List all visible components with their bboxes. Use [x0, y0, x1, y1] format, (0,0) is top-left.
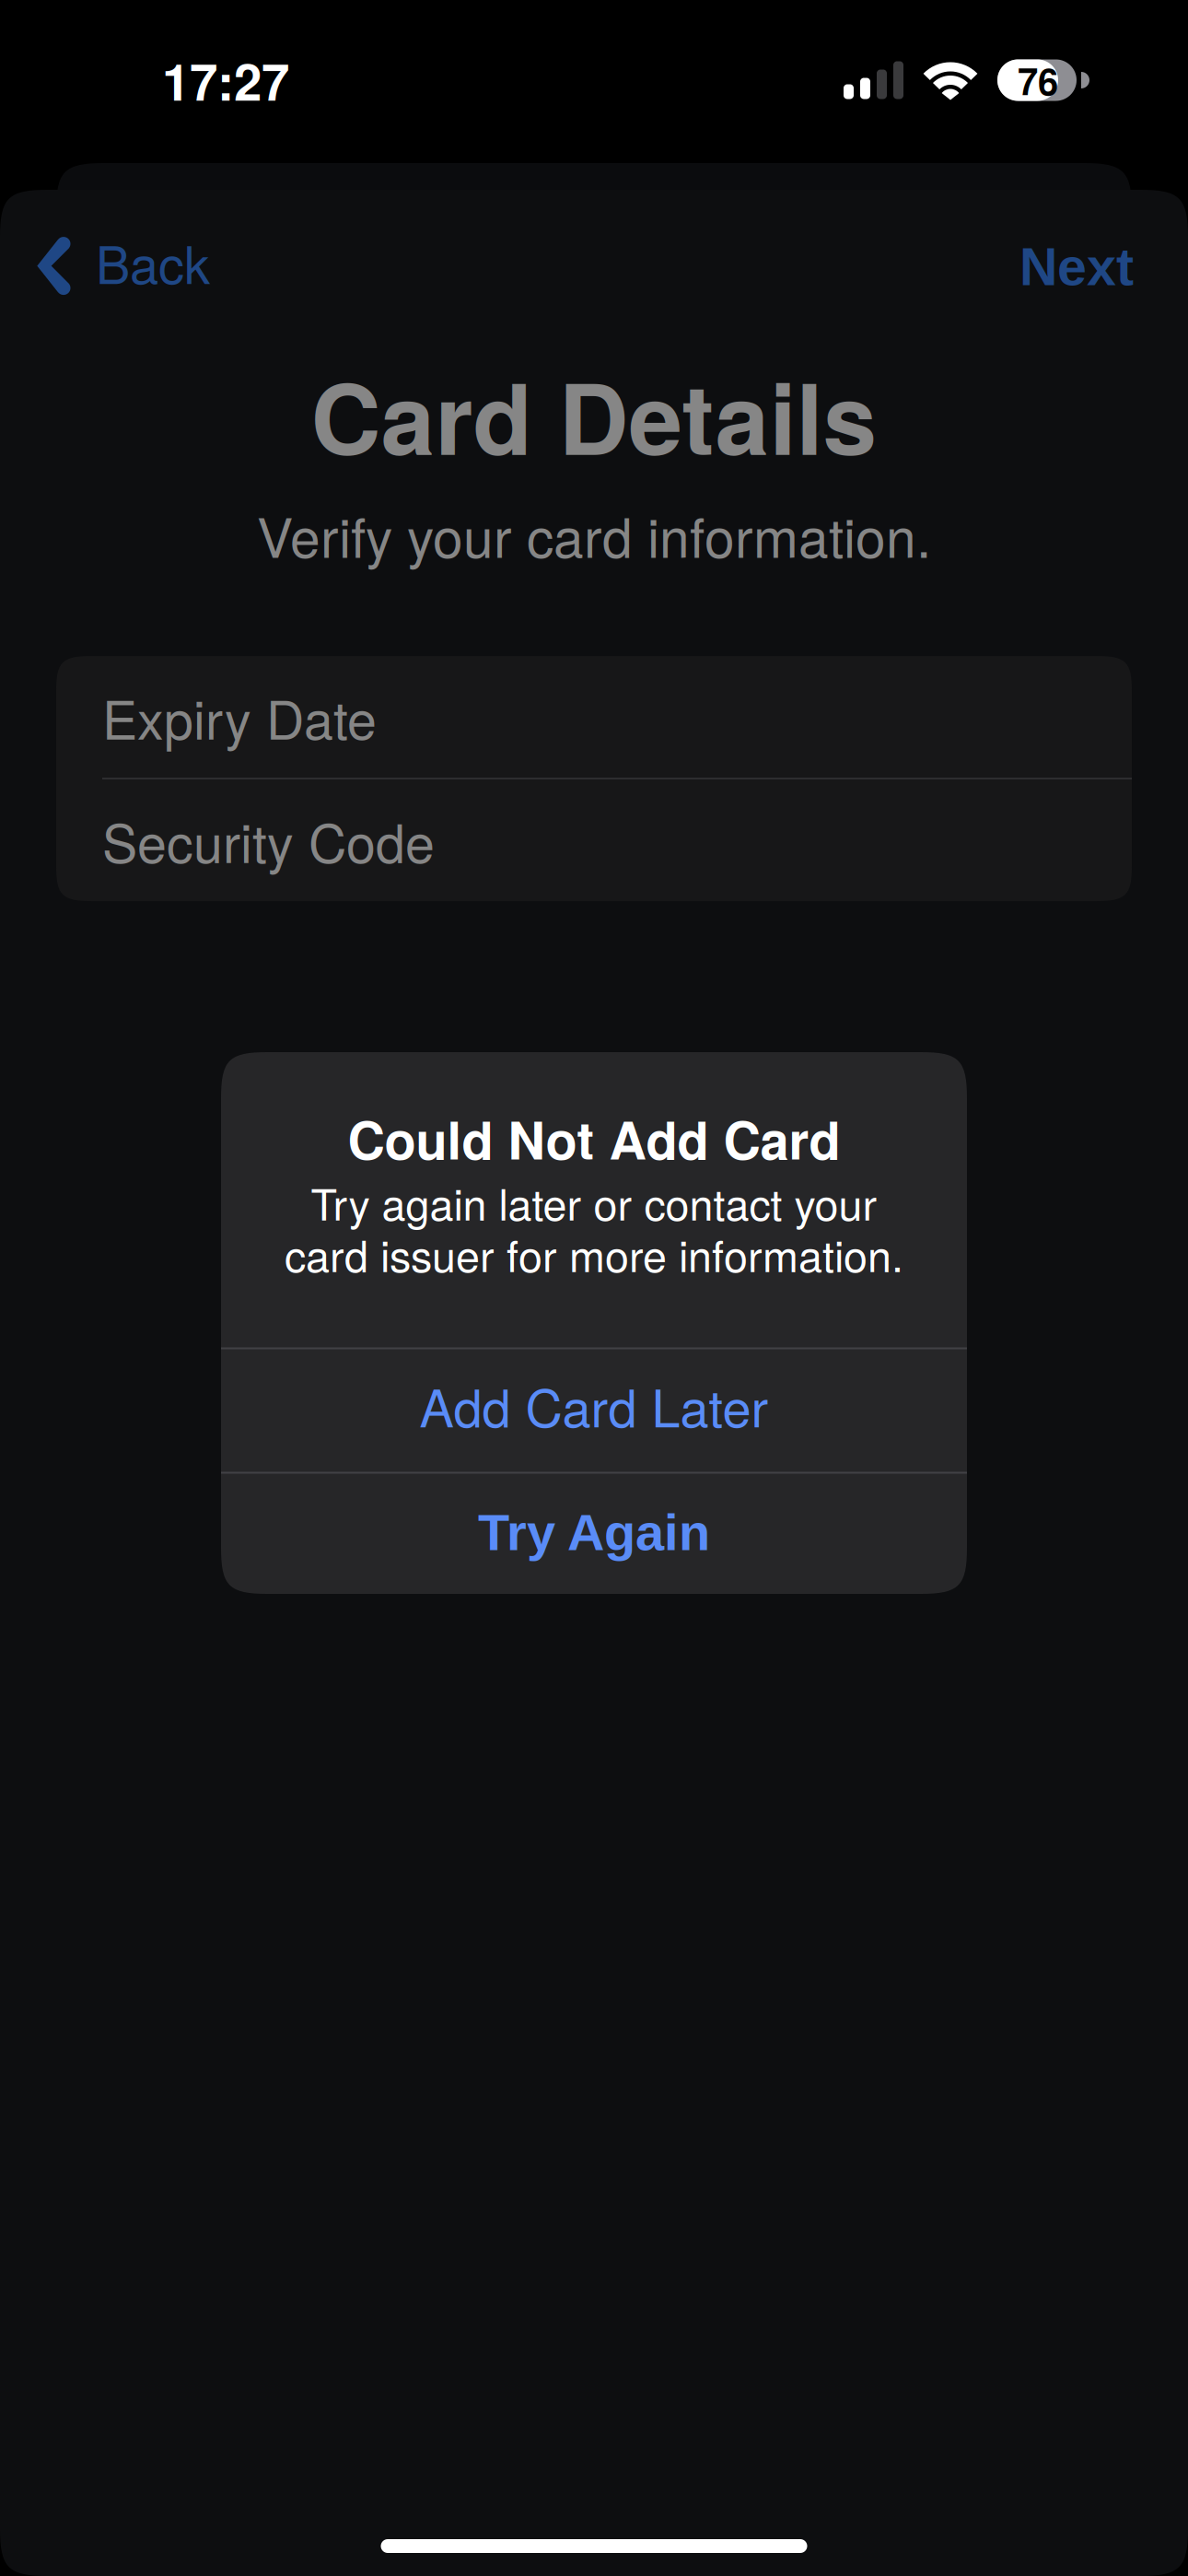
staticText: Try again later or contact your	[311, 1171, 877, 1233]
staticText: 17:27	[162, 44, 289, 116]
staticText: 76	[1018, 54, 1058, 107]
button[interactable]: Try Again	[221, 1474, 967, 1594]
staticText: Expiry Date	[102, 679, 377, 755]
staticText: card issuer for more information.	[285, 1223, 903, 1284]
staticText: Add Card Later	[419, 1368, 769, 1442]
staticText: Try Again	[478, 1503, 710, 1561]
staticText: Could Not Add Card	[348, 1101, 840, 1175]
button[interactable]: Expiry Date	[56, 656, 1132, 778]
staticText: Next	[1019, 237, 1134, 296]
staticText: Verify your card information.	[257, 496, 931, 573]
staticText: Card Details	[311, 346, 877, 485]
staticText: Security Code	[102, 802, 435, 878]
button[interactable]: Back	[0, 217, 210, 322]
button[interactable]: Next	[1019, 229, 1188, 310]
button[interactable]: Add Card Later	[221, 1349, 967, 1472]
staticText: Back	[96, 225, 210, 299]
button[interactable]: Security Code	[56, 779, 1132, 901]
